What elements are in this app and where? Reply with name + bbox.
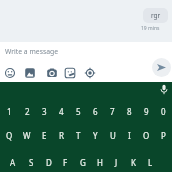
button[interactable]: G xyxy=(74,152,91,172)
button[interactable] xyxy=(84,67,96,79)
button[interactable] xyxy=(24,67,36,79)
button[interactable]: J xyxy=(108,152,125,172)
staticText: G xyxy=(80,157,86,168)
button[interactable]: L xyxy=(142,152,159,172)
staticText: 19 mins xyxy=(141,25,160,32)
staticText: 0 xyxy=(161,106,166,117)
staticText: rgr xyxy=(151,11,161,20)
staticText: 4 xyxy=(59,106,64,117)
button[interactable]: T xyxy=(70,125,87,145)
staticText: L xyxy=(148,157,153,168)
button[interactable]: 3 xyxy=(36,102,53,121)
staticText: 5 xyxy=(76,106,81,117)
staticText: 1 xyxy=(7,106,12,117)
staticText: 6 xyxy=(93,106,98,117)
staticText: 8 xyxy=(127,106,132,117)
staticText: I xyxy=(128,130,131,141)
staticText: P xyxy=(161,130,166,141)
staticText: A xyxy=(10,157,16,168)
staticText: O xyxy=(143,130,150,141)
button[interactable]: 0 xyxy=(155,102,172,121)
button[interactable] xyxy=(152,58,171,77)
button[interactable]: 1 xyxy=(0,102,18,121)
staticText: Y xyxy=(93,130,98,141)
button[interactable] xyxy=(46,67,58,79)
button[interactable]: 2 xyxy=(18,102,36,121)
staticText: E xyxy=(42,130,47,141)
button[interactable]: P xyxy=(155,125,172,145)
button[interactable]: Q xyxy=(0,125,18,145)
button[interactable]: Y xyxy=(87,125,104,145)
button[interactable]: K xyxy=(125,152,142,172)
staticText: 7 xyxy=(110,106,115,117)
button[interactable]: 8 xyxy=(121,102,138,121)
button[interactable]: 4 xyxy=(53,102,70,121)
staticText: F xyxy=(63,157,68,168)
staticText: J xyxy=(115,157,118,168)
staticText: W xyxy=(23,130,31,141)
staticText: U xyxy=(110,130,116,141)
staticText: D xyxy=(46,157,52,168)
staticText: K xyxy=(131,157,136,168)
staticText: T xyxy=(76,130,81,141)
staticText: 3 xyxy=(42,106,47,117)
button[interactable]: 5 xyxy=(70,102,87,121)
button[interactable]: S xyxy=(22,152,40,172)
staticText: Write a message xyxy=(5,47,58,56)
button[interactable] xyxy=(64,67,76,79)
staticText: Q xyxy=(6,130,13,141)
button[interactable]: 9 xyxy=(138,102,155,121)
button[interactable]: O xyxy=(138,125,155,145)
staticText: 2 xyxy=(25,106,30,117)
button[interactable]: F xyxy=(57,152,74,172)
staticText: R xyxy=(59,130,64,141)
staticText: 9 xyxy=(144,106,149,117)
button[interactable]: 7 xyxy=(104,102,121,121)
button[interactable]: U xyxy=(104,125,121,145)
button[interactable] xyxy=(158,84,170,96)
staticText: H xyxy=(97,157,103,168)
staticText: S xyxy=(29,157,34,168)
button[interactable]: rgr xyxy=(143,8,168,23)
button[interactable] xyxy=(4,67,16,79)
button[interactable]: W xyxy=(18,125,36,145)
button[interactable]: D xyxy=(40,152,57,172)
button[interactable]: H xyxy=(91,152,108,172)
button[interactable]: 6 xyxy=(87,102,104,121)
button[interactable]: R xyxy=(53,125,70,145)
button[interactable]: E xyxy=(36,125,53,145)
button[interactable]: I xyxy=(121,125,138,145)
button[interactable]: A xyxy=(4,152,22,172)
